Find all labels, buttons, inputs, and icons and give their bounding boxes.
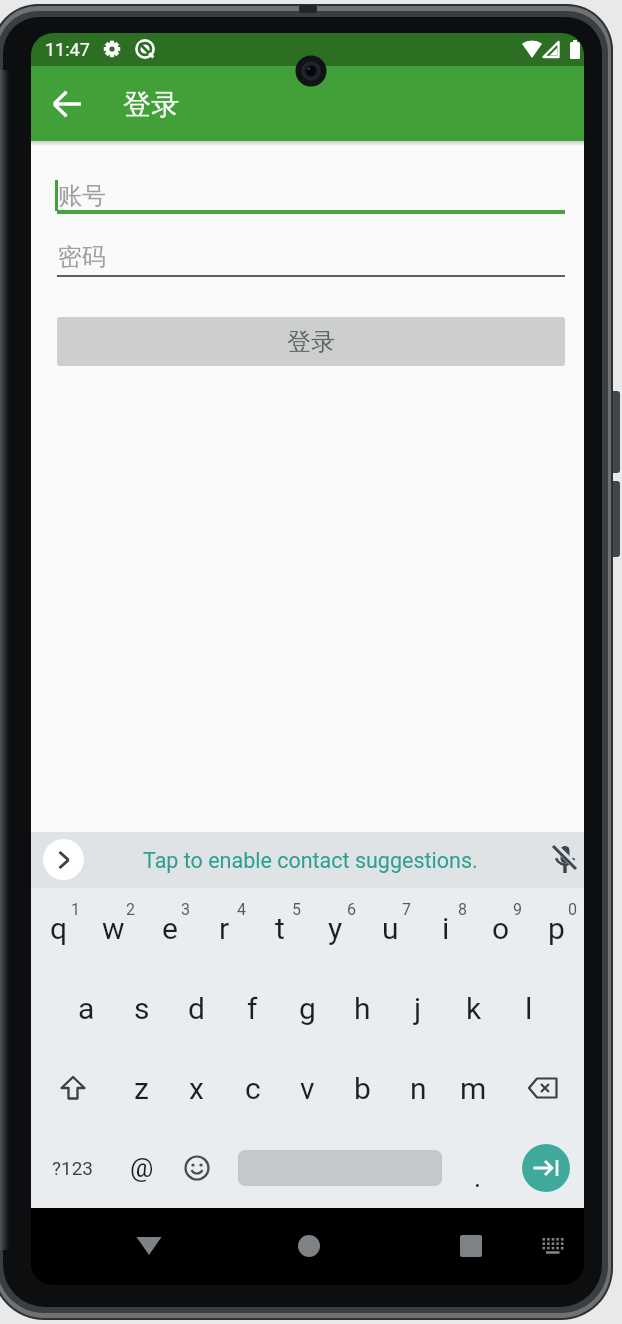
staticText: g: [299, 991, 316, 1026]
button[interactable]: k: [446, 968, 501, 1048]
button[interactable]: @: [114, 1128, 169, 1208]
staticText: @: [130, 1153, 154, 1183]
button[interactable]: l: [501, 968, 556, 1048]
staticText: j: [414, 991, 422, 1026]
button[interactable]: i: [418, 888, 473, 968]
button[interactable]: [529, 1220, 577, 1272]
staticText: r: [219, 911, 230, 946]
button[interactable]: d: [169, 968, 224, 1048]
staticText: s: [134, 991, 150, 1026]
staticText: y: [328, 911, 343, 946]
staticText: q: [50, 911, 68, 946]
staticText: 0: [568, 900, 577, 919]
staticText: m: [460, 1071, 487, 1106]
button[interactable]: u: [363, 888, 418, 968]
staticText: ?123: [52, 1157, 94, 1179]
button[interactable]: ?123: [31, 1128, 114, 1208]
staticText: 登录: [123, 87, 179, 122]
staticText: c: [245, 1071, 261, 1106]
staticText: 密码: [58, 242, 106, 272]
button[interactable]: h: [335, 968, 390, 1048]
button[interactable]: [441, 1214, 501, 1278]
staticText: Tap to enable contact suggestions.: [143, 848, 478, 873]
staticText: 9: [513, 900, 522, 919]
staticText: v: [300, 1071, 315, 1106]
button[interactable]: m: [446, 1048, 501, 1128]
button[interactable]: [522, 1144, 570, 1192]
button[interactable]: p: [529, 888, 584, 968]
button[interactable]: [43, 839, 84, 880]
button[interactable]: 密码: [58, 239, 278, 275]
button[interactable]: z: [114, 1048, 169, 1128]
staticText: w: [102, 911, 125, 946]
button[interactable]: [169, 1128, 224, 1208]
button[interactable]: t: [252, 888, 307, 968]
staticText: u: [382, 911, 399, 946]
staticText: 5: [292, 900, 301, 919]
button[interactable]: g: [280, 968, 335, 1048]
staticText: 7: [402, 900, 411, 919]
button[interactable]: [279, 1214, 339, 1278]
button[interactable]: y: [308, 888, 363, 968]
staticText: f: [247, 991, 258, 1026]
staticText: t: [275, 911, 285, 946]
staticText: l: [525, 991, 533, 1026]
staticText: k: [466, 991, 482, 1026]
button[interactable]: [31, 1048, 114, 1128]
button[interactable]: 登录: [57, 317, 565, 366]
staticText: .: [474, 1162, 482, 1194]
staticText: 1: [71, 900, 80, 919]
staticText: e: [162, 911, 178, 946]
staticText: o: [492, 911, 510, 946]
button[interactable]: 账号: [58, 178, 278, 214]
staticText: p: [548, 911, 565, 946]
staticText: 登录: [287, 327, 335, 357]
staticText: 6: [347, 900, 356, 919]
staticText: 11:47: [45, 39, 90, 60]
staticText: z: [134, 1071, 149, 1106]
staticText: a: [78, 991, 95, 1026]
staticText: 2: [126, 900, 135, 919]
staticText: 4: [237, 900, 246, 919]
button[interactable]: s: [114, 968, 169, 1048]
button[interactable]: n: [391, 1048, 446, 1128]
staticText: b: [354, 1071, 371, 1106]
button[interactable]: q: [31, 888, 86, 968]
button[interactable]: b: [335, 1048, 390, 1128]
staticText: h: [354, 991, 371, 1026]
button[interactable]: v: [280, 1048, 335, 1128]
button[interactable]: j: [390, 968, 445, 1048]
staticText: n: [410, 1071, 427, 1106]
button[interactable]: .: [450, 1138, 505, 1218]
staticText: x: [189, 1071, 204, 1106]
button[interactable]: e: [142, 888, 197, 968]
button[interactable]: a: [59, 968, 114, 1048]
button[interactable]: x: [169, 1048, 224, 1128]
staticText: 8: [458, 900, 467, 919]
button[interactable]: [119, 1214, 179, 1278]
button[interactable]: w: [86, 888, 141, 968]
button[interactable]: [45, 83, 91, 125]
button[interactable]: f: [225, 968, 280, 1048]
button[interactable]: r: [197, 888, 252, 968]
staticText: d: [188, 991, 205, 1026]
staticText: 账号: [58, 181, 106, 211]
staticText: i: [442, 911, 450, 946]
button[interactable]: [501, 1048, 584, 1128]
button[interactable]: c: [225, 1048, 280, 1128]
button[interactable]: [546, 841, 584, 879]
staticText: 3: [181, 900, 190, 919]
button[interactable]: o: [473, 888, 528, 968]
